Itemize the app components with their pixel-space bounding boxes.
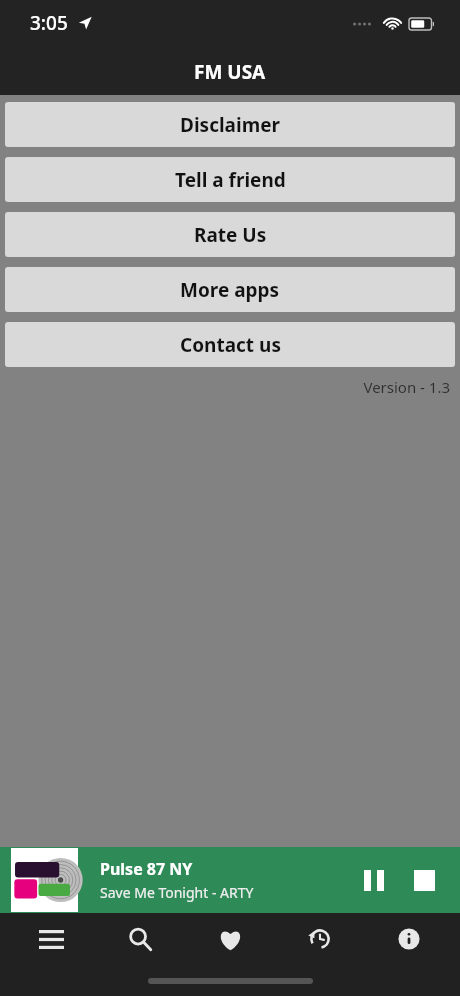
staticText: More apps bbox=[180, 277, 280, 303]
button[interactable]: Contact us bbox=[5, 322, 455, 367]
staticText: Pulse 87 NY bbox=[100, 858, 193, 880]
button[interactable]: More apps bbox=[5, 267, 455, 312]
button[interactable]: Station logo bbox=[11, 848, 78, 912]
button[interactable]: Disclaimer bbox=[5, 102, 455, 147]
button[interactable]: Tell a friend bbox=[5, 157, 455, 202]
button[interactable]: History bbox=[281, 913, 359, 965]
staticText: Save Me Tonight - ARTY bbox=[100, 883, 254, 902]
button[interactable]: Menu bbox=[12, 913, 90, 965]
button[interactable]: Favorites bbox=[191, 913, 269, 965]
staticText: Version - 1.3 bbox=[363, 377, 450, 397]
staticText: Rate Us bbox=[194, 222, 267, 248]
button[interactable]: Pause bbox=[350, 856, 398, 904]
staticText: Contact us bbox=[180, 332, 281, 358]
staticText: 3:05 bbox=[30, 10, 68, 36]
staticText: FM USA bbox=[194, 59, 266, 85]
button[interactable]: Rate Us bbox=[5, 212, 455, 257]
button[interactable]: Stop bbox=[400, 856, 448, 904]
staticText: Disclaimer bbox=[180, 112, 281, 138]
button[interactable]: Search bbox=[101, 913, 179, 965]
staticText: Tell a friend bbox=[175, 167, 286, 193]
button[interactable]: Info bbox=[370, 913, 448, 965]
